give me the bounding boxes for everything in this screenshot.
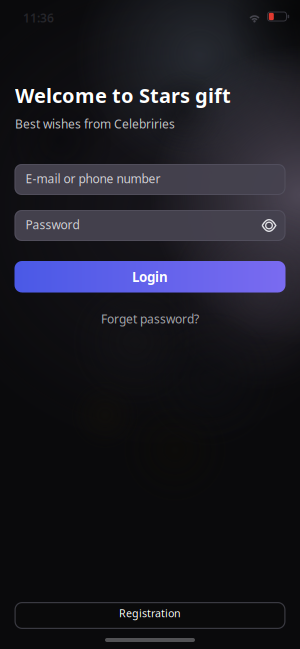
staticText: Forget password? xyxy=(101,311,199,327)
staticText: Welcome to Stars gift xyxy=(15,82,231,109)
staticText: 11:36 xyxy=(23,10,54,26)
staticText: Password xyxy=(25,216,79,232)
staticText: Best wishes from Celebriries xyxy=(15,116,175,132)
staticText: Registration xyxy=(119,606,181,620)
staticText: Login xyxy=(132,268,168,286)
staticText: E-mail or phone number xyxy=(25,170,160,186)
